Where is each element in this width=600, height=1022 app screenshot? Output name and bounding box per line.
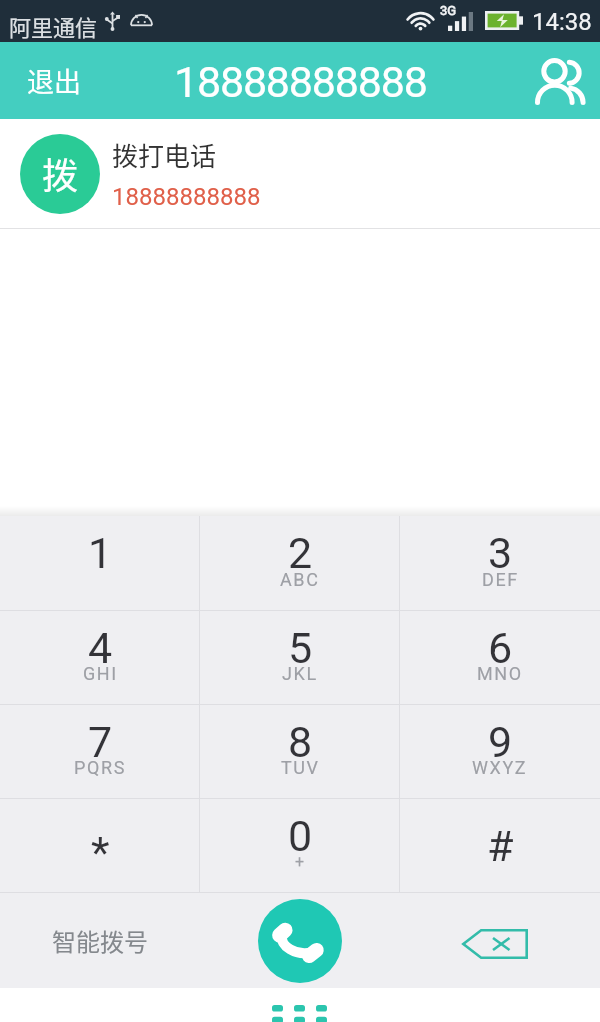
staticText: GHI (83, 663, 118, 684)
button[interactable]: Call (258, 899, 342, 983)
staticText: 退出 (27, 61, 81, 100)
staticText: 5 (288, 623, 313, 673)
button[interactable]: 9 (400, 705, 600, 798)
button[interactable]: Contacts (517, 42, 600, 119)
staticText: 14:38 (532, 8, 592, 36)
button[interactable]: 退出 (0, 42, 103, 119)
staticText: 2 (288, 528, 313, 578)
staticText: 6 (488, 623, 513, 673)
staticText: 9 (488, 717, 513, 767)
staticText: 0 (288, 811, 313, 861)
button[interactable]: 5 (200, 611, 400, 704)
button[interactable]: 7 (0, 705, 200, 798)
staticText: * (91, 827, 110, 877)
button[interactable]: 拨 (0, 119, 600, 229)
staticText: 阿里通信 (9, 10, 98, 42)
staticText: 拨 (42, 147, 79, 199)
button[interactable]: 1 (0, 516, 200, 610)
staticText: 拨打电话 (112, 136, 217, 174)
button[interactable]: 0 (200, 799, 400, 892)
staticText: 18888888888 (112, 183, 261, 211)
staticText: 18888888888 (174, 57, 427, 107)
staticText: DEF (482, 569, 519, 590)
staticText: + (295, 852, 306, 871)
staticText: 8 (288, 717, 313, 767)
staticText: 1 (88, 528, 113, 578)
staticText: 4 (88, 623, 113, 673)
button[interactable]: * (0, 799, 200, 892)
button[interactable]: # (400, 799, 600, 892)
button[interactable]: Keypad (272, 1005, 328, 1022)
staticText: WXYZ (472, 757, 528, 778)
staticText: JKL (282, 663, 318, 684)
button[interactable]: 8 (200, 705, 400, 798)
staticText: MNO (477, 663, 523, 684)
button[interactable]: 2 (200, 516, 400, 610)
button[interactable]: 智能拨号 (0, 893, 199, 988)
staticText: # (487, 821, 514, 871)
staticText: PQRS (74, 757, 126, 778)
staticText: 7 (88, 717, 113, 767)
staticText: 3G (440, 3, 457, 18)
staticText: TUV (281, 757, 320, 778)
button[interactable]: 3 (400, 516, 600, 610)
button[interactable]: 6 (400, 611, 600, 704)
button[interactable]: Backspace (400, 893, 600, 988)
button[interactable]: 4 (0, 611, 200, 704)
staticText: 智能拨号 (52, 923, 148, 958)
staticText: 3 (488, 528, 513, 578)
staticText: ABC (280, 569, 320, 590)
